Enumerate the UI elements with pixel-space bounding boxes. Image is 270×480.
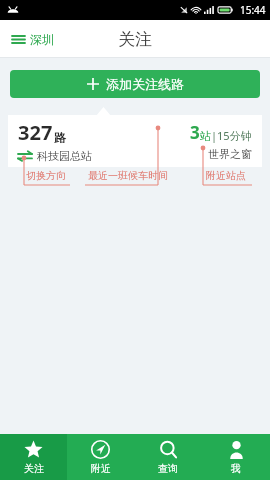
other: 关注 <box>24 440 43 459</box>
button[interactable]: 添加关注线路 <box>10 70 260 98</box>
staticText: 切换方向 <box>26 169 66 182</box>
staticText: 我 <box>231 462 241 475</box>
button[interactable]: 327 <box>8 115 262 167</box>
other: 我 <box>227 440 246 459</box>
staticText: 3 <box>190 121 200 144</box>
button[interactable]: 查询 <box>134 434 202 480</box>
staticText: 最近一班候车时间 <box>88 169 168 182</box>
button[interactable]: 我 <box>202 434 270 480</box>
button[interactable]: 关注 <box>0 434 67 480</box>
staticText: 15:44 <box>240 3 266 17</box>
staticText: 327 <box>18 119 53 146</box>
button[interactable]: 附近 <box>67 434 134 480</box>
staticText: 添加关注线路 <box>106 76 184 92</box>
staticText: 关注 <box>118 29 152 50</box>
staticText: 科技园总站 <box>37 149 92 163</box>
staticText: 关注 <box>24 462 44 475</box>
staticText: 附近站点 <box>206 169 246 182</box>
staticText: 站 <box>200 129 211 143</box>
staticText: 世界之窗 <box>208 147 252 161</box>
staticText: 查询 <box>158 462 178 475</box>
staticText: |15分钟 <box>211 128 252 143</box>
staticText: 附近 <box>91 462 111 475</box>
staticText: 路 <box>54 130 66 145</box>
other: 附近 <box>91 440 110 459</box>
button[interactable]: 深圳 <box>10 28 56 51</box>
other: 查询 <box>159 440 178 459</box>
staticText: 深圳 <box>30 32 54 47</box>
